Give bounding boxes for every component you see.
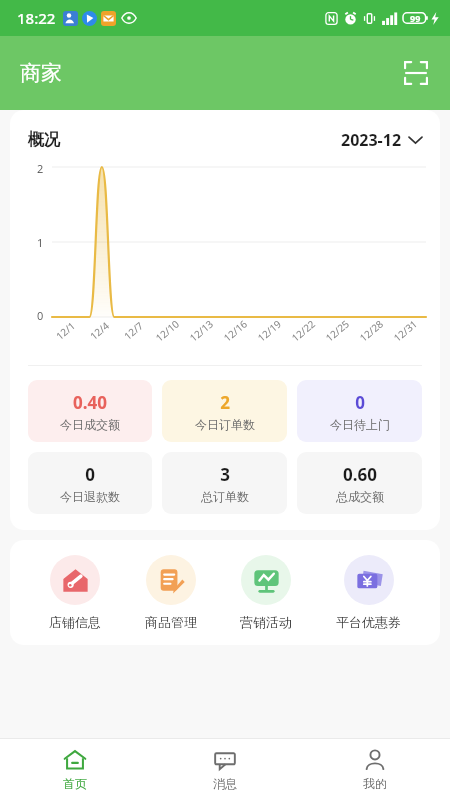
staticText: 12/4 <box>87 318 112 343</box>
staticText: 0 <box>37 308 44 323</box>
staticText: 1 <box>37 235 44 250</box>
staticText: 总成交额 <box>336 489 384 504</box>
staticText: 12/28 <box>356 317 386 345</box>
staticText: 12/22 <box>288 317 318 345</box>
staticText: 18:22 <box>17 8 56 28</box>
staticText: 12/7 <box>121 318 146 343</box>
button[interactable]: 3 <box>162 452 287 514</box>
staticText: 今日待上门 <box>330 417 390 432</box>
button[interactable]: 0 <box>297 380 422 442</box>
button[interactable]: 营销活动 <box>236 555 296 630</box>
staticText: 首页 <box>63 776 87 791</box>
staticText: 概况 <box>28 130 60 150</box>
button[interactable]: 商品管理 <box>141 555 201 630</box>
staticText: 12/19 <box>254 317 284 345</box>
button[interactable]: 消息 <box>150 739 300 800</box>
button[interactable]: 0.60 <box>297 452 422 514</box>
staticText: 平台优惠券 <box>336 614 401 630</box>
button[interactable]: 2 <box>162 380 287 442</box>
staticText: 99 <box>410 12 421 24</box>
staticText: 2023-12 <box>341 129 402 151</box>
staticText: 12/25 <box>322 317 352 345</box>
staticText: 12/16 <box>220 317 250 345</box>
staticText: 今日退款数 <box>60 489 120 504</box>
staticText: 2 <box>220 391 230 414</box>
button[interactable]: 2023-12 <box>337 125 426 155</box>
staticText: 店铺信息 <box>49 614 101 630</box>
staticText: 12/1 <box>53 318 78 343</box>
staticText: 0.40 <box>73 391 107 414</box>
staticText: 12/31 <box>390 317 420 345</box>
staticText: 12/13 <box>186 317 216 345</box>
button[interactable]: 店铺信息 <box>45 555 105 630</box>
staticText: 2 <box>37 161 44 176</box>
staticText: 营销活动 <box>240 614 292 630</box>
staticText: 商家 <box>20 60 62 86</box>
button[interactable]: 我的 <box>300 739 450 800</box>
staticText: 12/10 <box>152 317 182 345</box>
button[interactable]: 首页 <box>0 739 150 800</box>
staticText: 0 <box>85 463 95 486</box>
staticText: 我的 <box>363 776 387 791</box>
staticText: 商品管理 <box>145 614 197 630</box>
staticText: 0.60 <box>343 463 377 486</box>
staticText: 今日订单数 <box>195 417 255 432</box>
staticText: 今日成交额 <box>60 417 120 432</box>
staticText: 消息 <box>213 776 237 791</box>
staticText: 3 <box>220 463 230 486</box>
button[interactable]: 0.40 <box>28 380 152 442</box>
button[interactable]: 平台优惠券 <box>332 555 405 630</box>
staticText: 总订单数 <box>201 489 249 504</box>
staticText: 0 <box>355 391 365 414</box>
button[interactable]: 0 <box>28 452 152 514</box>
button[interactable]: 扫一扫 <box>396 53 436 93</box>
